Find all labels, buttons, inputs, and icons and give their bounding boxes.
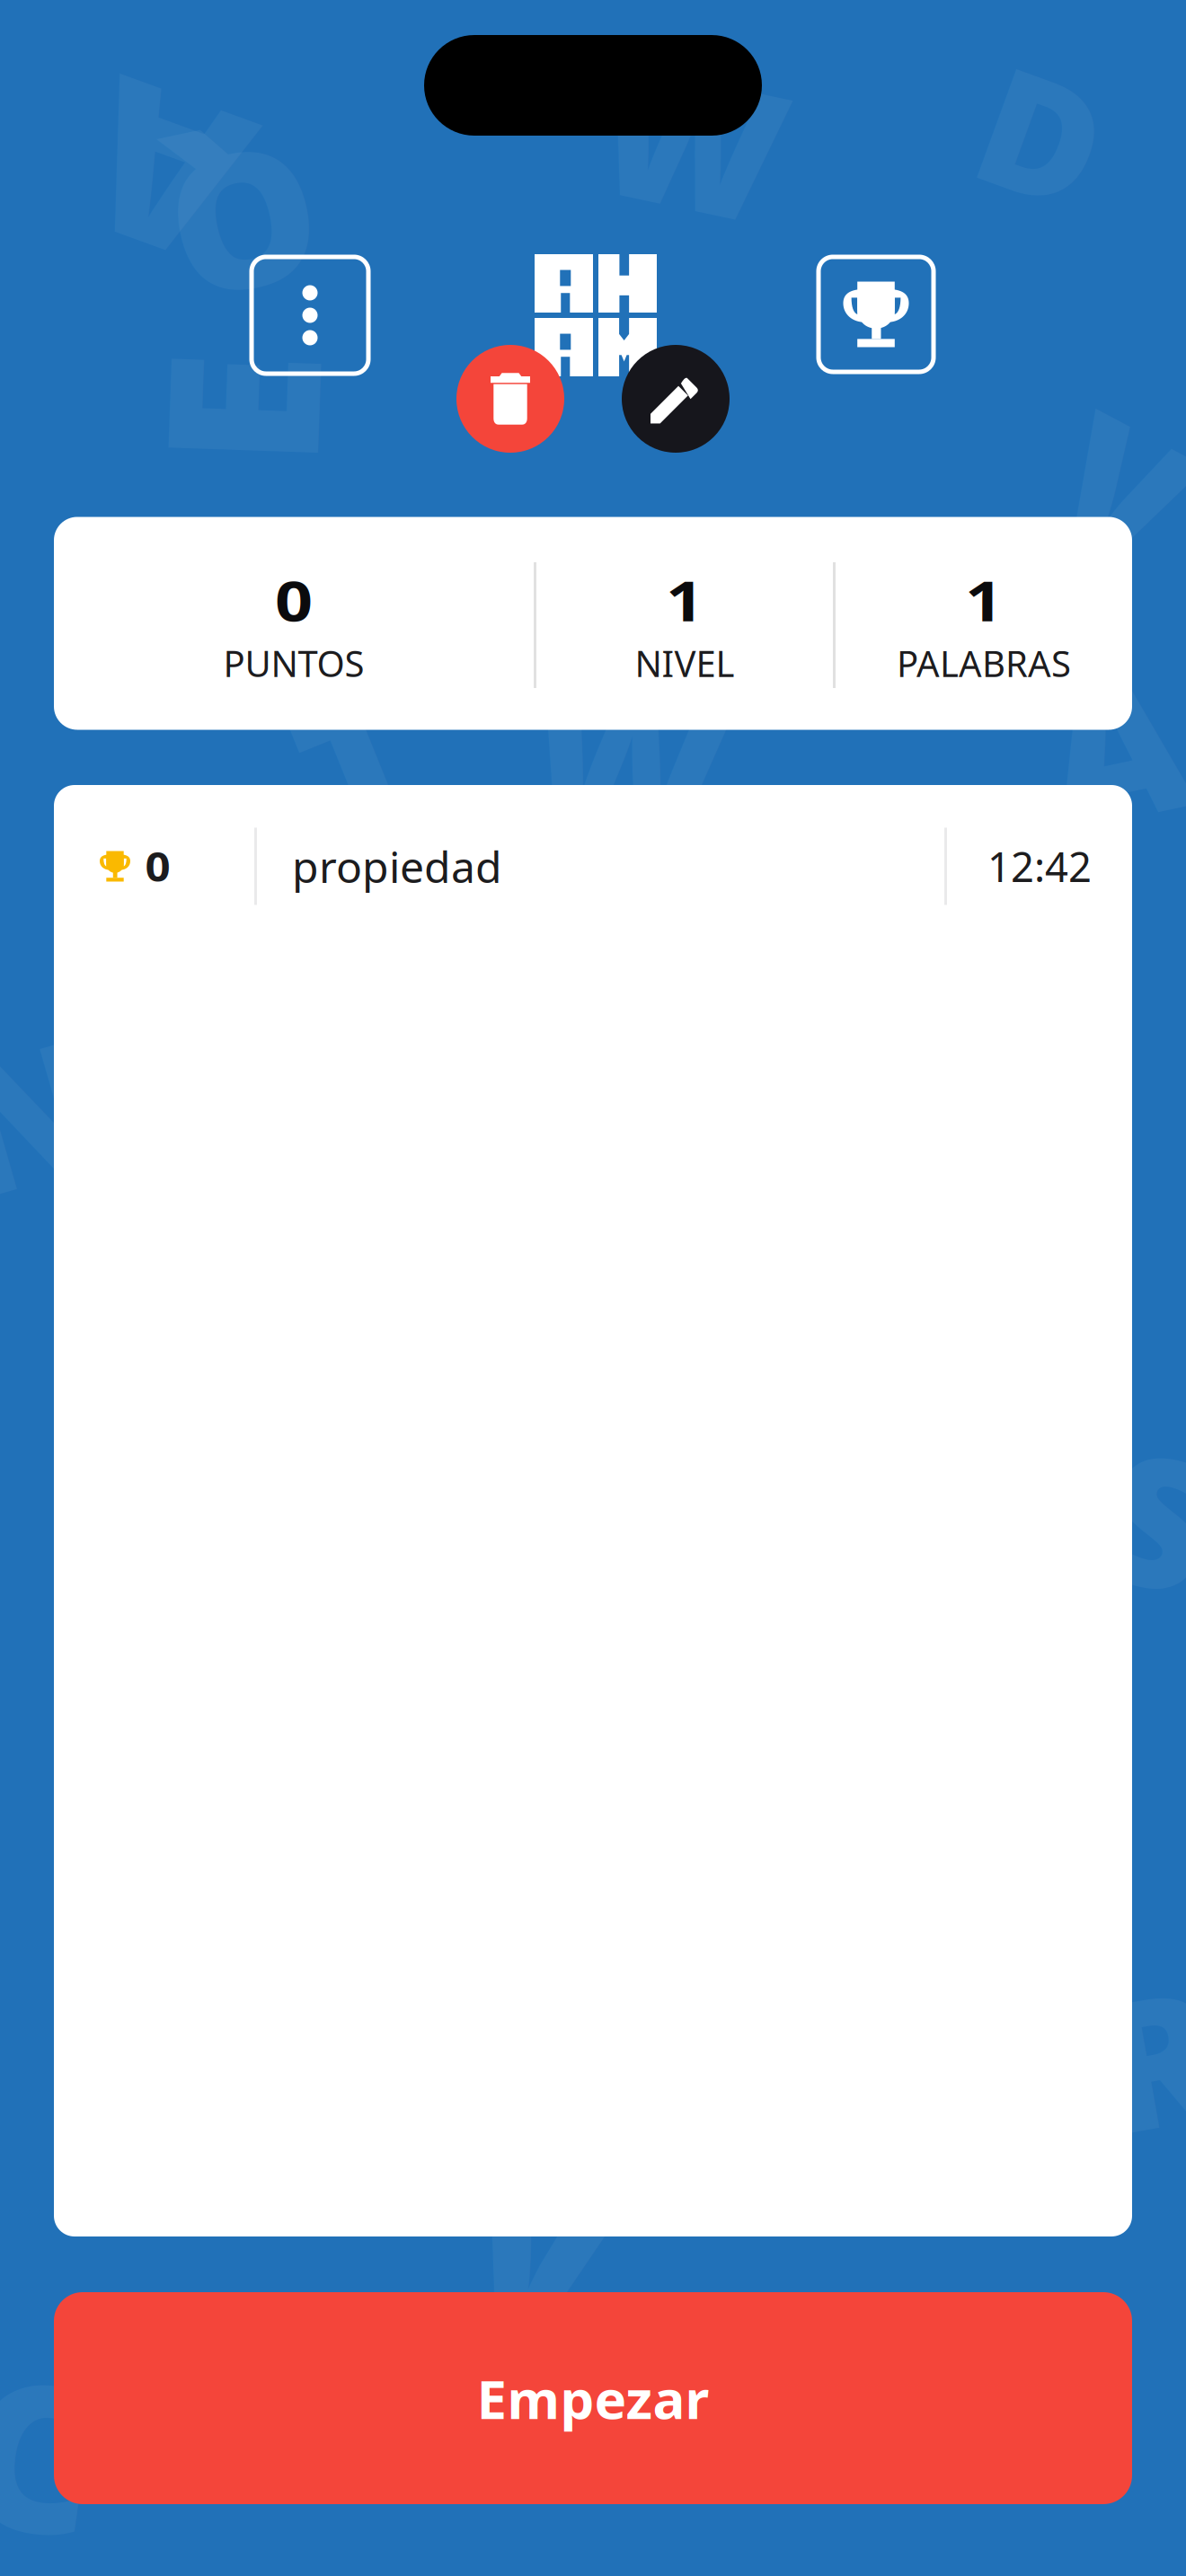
staticText: 0 <box>278 563 310 636</box>
staticText: D <box>983 27 1102 242</box>
staticText: NIVEL <box>635 639 735 687</box>
button[interactable]: Menu <box>252 257 368 374</box>
staticText: C <box>0 2317 97 2576</box>
staticText: PALABRAS <box>897 639 1071 687</box>
staticText: S <box>1107 1399 1186 1637</box>
staticText: 12:42 <box>987 839 1092 893</box>
staticText: A <box>1044 618 1184 873</box>
staticText: R <box>1098 1938 1186 2176</box>
staticText: propiedad <box>292 838 502 895</box>
staticText: W <box>529 627 729 882</box>
staticText: 0 <box>146 840 169 893</box>
button[interactable]: Delete <box>456 345 564 453</box>
staticText: T <box>303 636 416 891</box>
staticText: W <box>598 20 785 258</box>
button[interactable]: 0 <box>54 785 1132 948</box>
staticText: Empezar <box>477 2362 709 2434</box>
staticText: V <box>469 2115 610 2385</box>
button[interactable]: Empezar <box>54 2292 1132 2504</box>
button[interactable]: Edit <box>622 345 730 453</box>
button[interactable]: Leaderboard <box>819 257 934 372</box>
staticText: 1 <box>669 563 700 636</box>
staticText: E <box>181 270 296 548</box>
staticText: 1 <box>968 563 1000 636</box>
staticText: A <box>88 37 239 315</box>
staticText: N <box>0 994 102 1233</box>
staticText: V <box>1061 370 1186 609</box>
staticText: PUNTOS <box>223 639 364 687</box>
staticText: Q <box>170 103 319 350</box>
